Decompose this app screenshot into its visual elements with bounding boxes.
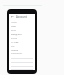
staticText: City	[11, 45, 15, 48]
button[interactable]: Email	[11, 29, 33, 35]
staticText: alex@x.io	[11, 32, 22, 35]
button[interactable]: ←	[11, 15, 33, 19]
button[interactable]: Name	[11, 21, 33, 27]
button[interactable]	[11, 63, 33, 67]
staticText: Preferences	[11, 52, 23, 55]
button[interactable]: City	[11, 45, 33, 51]
staticText: Name	[11, 21, 17, 24]
button[interactable]	[11, 59, 33, 63]
staticText: Phone	[11, 37, 18, 40]
staticText: ←	[11, 15, 14, 19]
staticText: Email	[11, 29, 17, 32]
staticText: Account	[16, 15, 27, 19]
staticText: Alex	[11, 24, 16, 27]
button[interactable]	[11, 67, 33, 70]
staticText: +1 555	[11, 40, 19, 43]
button[interactable]	[11, 55, 33, 59]
button[interactable]: Phone	[11, 37, 33, 43]
staticText: Austin	[11, 48, 19, 51]
